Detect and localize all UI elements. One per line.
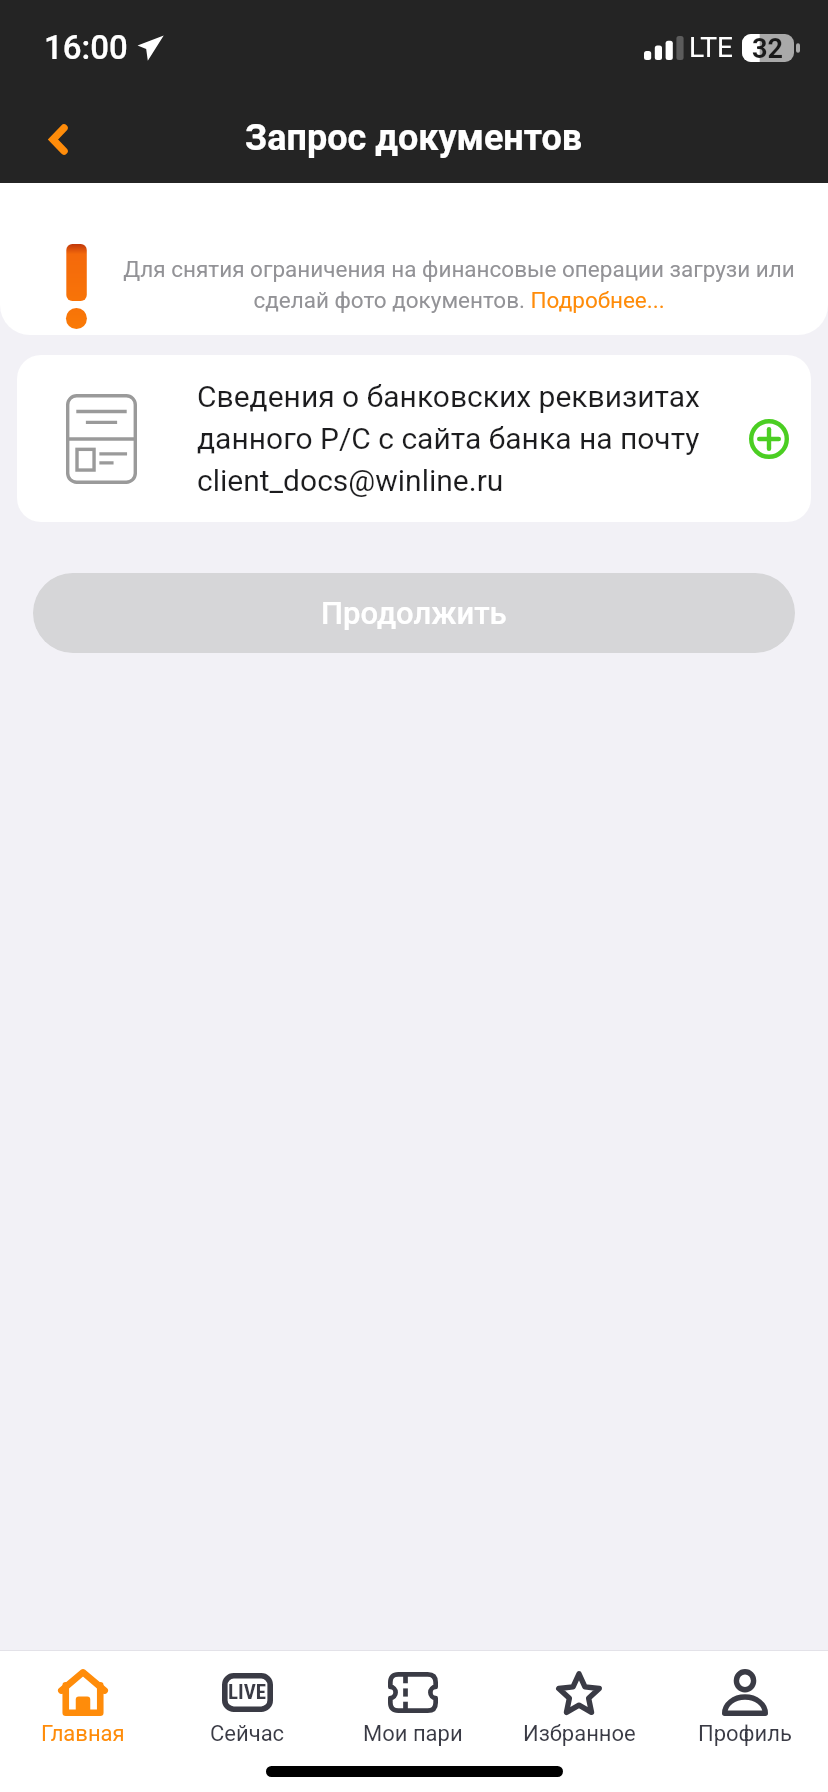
button[interactable]: Профиль [662,1651,828,1751]
staticText: Запрос документов [245,117,583,159]
staticText: Профиль [698,1721,792,1747]
staticText: Мои пари [363,1721,463,1747]
staticText: 32 [752,33,783,61]
staticText: Для снятия ограничения на финансовые опе… [109,256,809,313]
button[interactable]: Продолжить [33,573,795,653]
staticText: Главная [41,1721,125,1747]
staticText: 16:00 [44,28,128,67]
button[interactable]: Add document [737,407,801,471]
button[interactable]: Мои пари [330,1651,496,1751]
staticText: Избранное [523,1721,636,1747]
staticText: LIVE [228,1680,267,1705]
button[interactable]: Сведения о банковских реквизитах данного… [17,355,811,522]
staticText: Сведения о банковских реквизитах данного… [197,379,713,499]
button[interactable]: Back [24,105,92,173]
staticText: Сейчас [210,1721,285,1747]
button[interactable]: Главная [0,1651,165,1751]
button[interactable]: LIVE [165,1651,330,1751]
staticText: Продолжить [321,595,507,631]
staticText: LTE [689,31,733,64]
button[interactable]: Избранное [496,1651,662,1751]
